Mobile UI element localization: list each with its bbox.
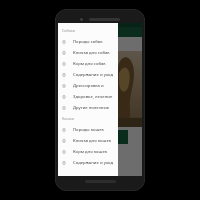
button[interactable]: Содержание и уход	[58, 157, 118, 168]
button[interactable]: Здоровье, лечение	[58, 91, 118, 102]
button[interactable]: Кличка для кошек	[58, 135, 118, 146]
staticText: Здоровье, лечение	[73, 94, 113, 100]
staticText: Собаки	[62, 28, 76, 33]
button[interactable]: Корм для собак	[58, 58, 118, 69]
button[interactable]: Корм для кошек	[58, 146, 118, 157]
button[interactable]: Toolbar	[58, 27, 142, 37]
button[interactable]: Другие полезные статьи	[58, 102, 118, 113]
staticText: Другие полезные статьи	[73, 105, 117, 111]
staticText: Корм для собак	[73, 61, 106, 67]
staticText: Породы кошек	[73, 127, 104, 133]
staticText: Кличка для собак	[73, 50, 110, 56]
staticText: Породы собак	[73, 39, 103, 45]
staticText: Содержание и уход	[73, 160, 114, 166]
staticText: Дрессировка и обучение	[73, 83, 117, 89]
button[interactable]: Open article	[115, 130, 128, 144]
staticText: Корм для кошек	[73, 149, 108, 155]
staticText: Кличка для кошек	[73, 138, 112, 144]
button[interactable]: Породы кошек	[58, 124, 118, 135]
button[interactable]: Породы собак	[58, 36, 118, 47]
staticText: Кошки	[62, 116, 74, 121]
staticText: Содержание и уход	[73, 72, 114, 78]
button[interactable]: Дрессировка и обучение	[58, 80, 118, 91]
button[interactable]: Кличка для собак	[58, 47, 118, 58]
button[interactable]: Содержание и уход	[58, 69, 118, 80]
